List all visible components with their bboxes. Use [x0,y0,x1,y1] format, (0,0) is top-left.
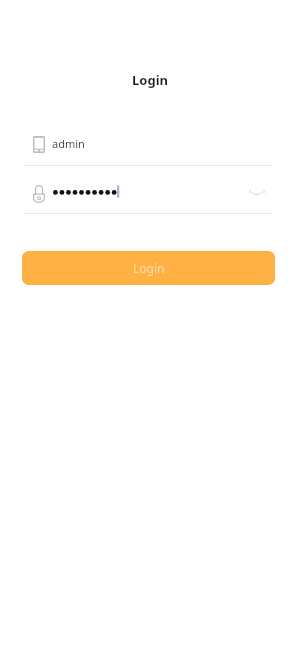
button[interactable]: Login [22,251,275,285]
button[interactable]: Show password [244,179,270,213]
button[interactable]: admin [21,131,277,166]
button[interactable] [21,179,243,214]
staticText: admin [52,136,85,151]
staticText: Login [0,71,300,89]
staticText: Login [133,260,165,276]
